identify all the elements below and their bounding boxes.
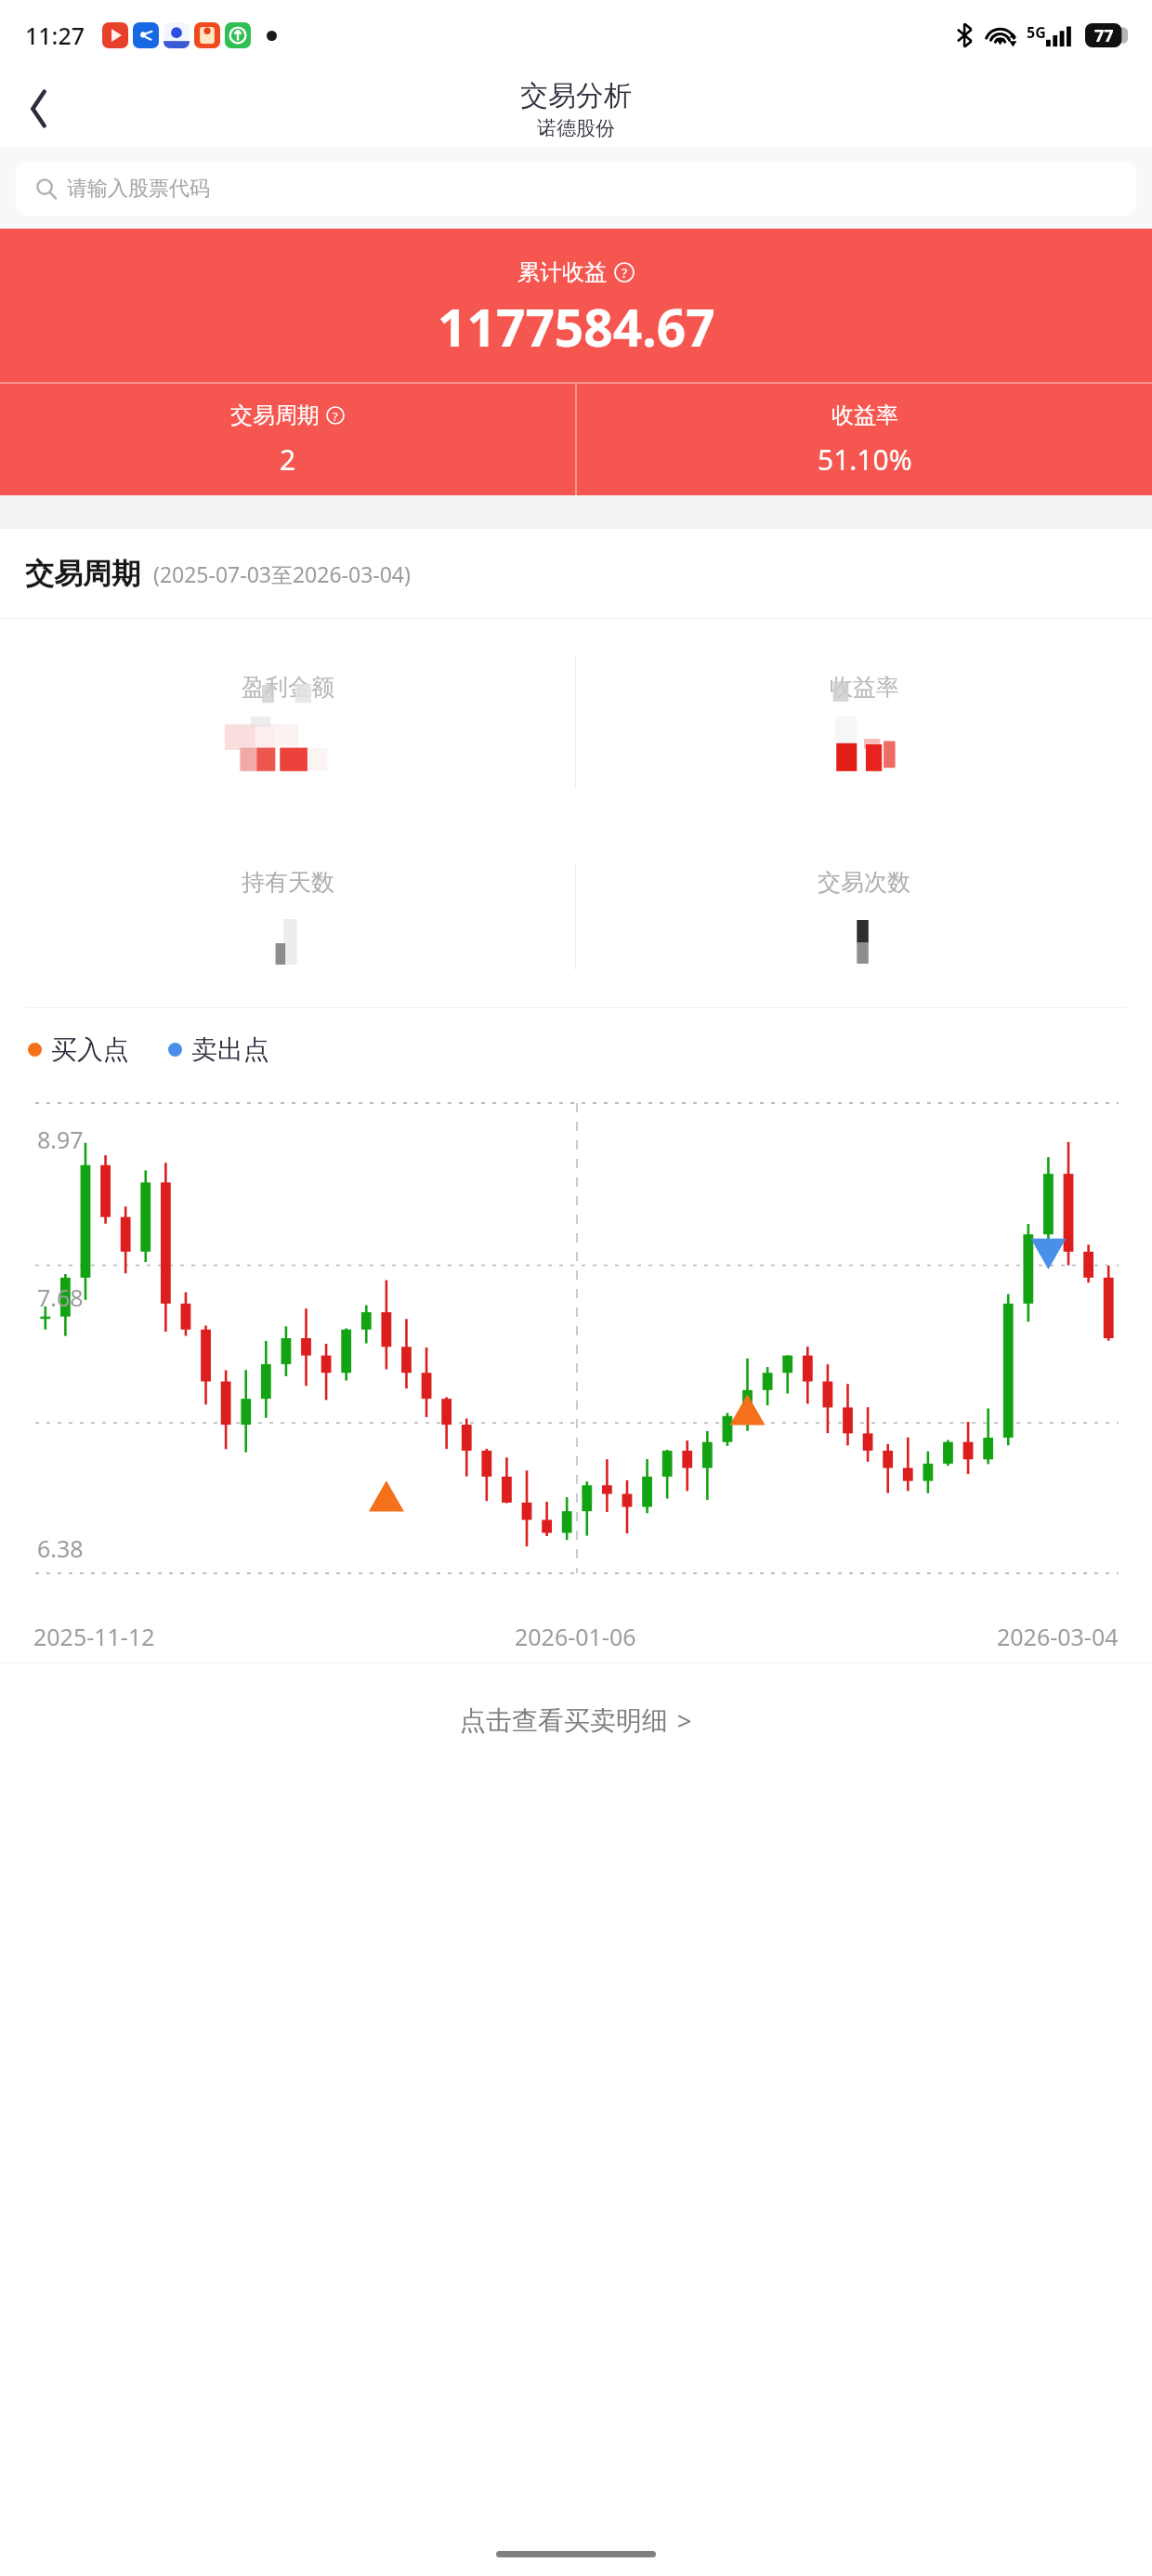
staticText: ? <box>622 264 628 282</box>
staticText: 收益率 <box>830 673 899 702</box>
staticText: 2 <box>280 440 296 479</box>
staticText: 77 <box>1094 24 1114 47</box>
staticText: 2026-03-04 <box>997 1621 1119 1652</box>
staticText: 买入点 <box>51 1033 129 1066</box>
staticText: 5G <box>1027 22 1046 43</box>
staticText: 11:27 <box>25 20 85 51</box>
button[interactable]: 持有天数 <box>0 825 575 1007</box>
staticText: 盈利金额 <box>242 673 334 702</box>
button[interactable]: 交易周期 <box>0 384 575 495</box>
staticText: 诺德股份 <box>537 116 615 140</box>
button[interactable]: 收益率 <box>577 384 1152 495</box>
button[interactable]: 卖出点 <box>168 1033 269 1066</box>
staticText: 6.38 <box>37 1532 84 1564</box>
staticText: ? <box>333 408 338 424</box>
staticText: > <box>677 1703 692 1738</box>
button[interactable]: 累计收益 <box>0 258 1152 286</box>
button[interactable]: 盈利金额 <box>0 619 575 825</box>
staticText: 8.97 <box>37 1124 84 1155</box>
staticText: 请输入股票代码 <box>67 176 210 202</box>
staticText: 交易分析 <box>520 78 632 113</box>
staticText: 1177584.67 <box>438 292 715 361</box>
staticText: 持有天数 <box>242 868 334 897</box>
staticText: 卖出点 <box>191 1033 269 1066</box>
staticText: (2025-07-03至2026-03-04) <box>153 559 411 588</box>
staticText: 收益率 <box>831 401 898 429</box>
staticText: 累计收益 <box>517 258 607 286</box>
button[interactable]: 买入点 <box>28 1033 129 1066</box>
staticText: 点击查看买卖明细 <box>460 1704 668 1737</box>
staticText: 2025-11-12 <box>33 1621 155 1652</box>
staticText: 交易周期 <box>25 556 140 592</box>
button[interactable]: Back <box>11 81 67 137</box>
staticText: 51.10% <box>818 440 912 479</box>
button[interactable]: 请输入股票代码 <box>16 161 1136 216</box>
button[interactable]: 收益率 <box>576 619 1152 825</box>
staticText: 2026-01-06 <box>515 1621 636 1652</box>
button[interactable]: 交易次数 <box>576 825 1152 1007</box>
staticText: 交易周期 <box>230 401 320 429</box>
staticText: 交易次数 <box>818 868 910 897</box>
button[interactable]: 点击查看买卖明细 <box>0 1663 1152 1777</box>
staticText: 7.68 <box>37 1281 84 1313</box>
